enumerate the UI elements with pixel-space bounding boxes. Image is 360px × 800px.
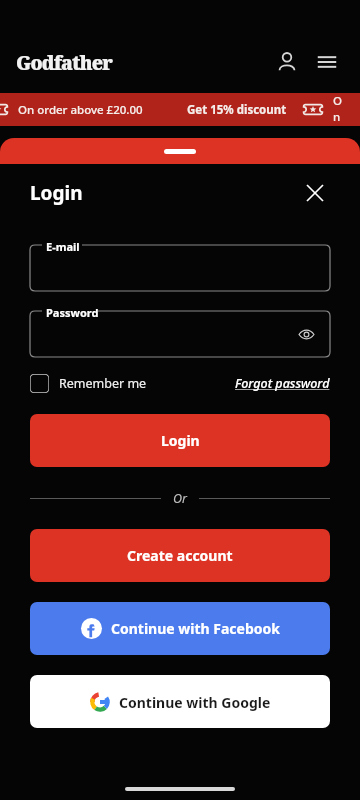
staticText: E-mail [46,239,80,254]
button[interactable]: Login [30,414,330,467]
button[interactable]: Create account [30,529,330,582]
button[interactable]: Continue with Facebook [30,602,330,655]
button[interactable] [30,245,330,291]
button[interactable]: Show password [292,320,320,348]
staticText: Forgot password [235,375,330,392]
staticText: Or [173,490,187,507]
button[interactable]: Forgot password [235,375,330,392]
button[interactable]: Menu [310,45,344,79]
staticText: Login [161,431,200,450]
staticText: On order above £20.00 [18,102,143,118]
staticText: Get 15% discount [187,102,287,118]
button[interactable]: Remember me [30,374,147,393]
staticText: Remember me [59,375,147,392]
button[interactable]: Show password [30,311,330,357]
staticText: Continue with Facebook [111,619,280,638]
staticText: Login [30,180,83,206]
staticText: Continue with Google [119,693,271,712]
button[interactable]: Close [300,178,330,208]
staticText: On order above £20.00 [333,93,348,126]
staticText: Password [46,305,99,320]
button[interactable]: Continue with Google [30,675,330,728]
staticText: Godfather [16,50,113,74]
button[interactable]: Account [270,45,304,79]
staticText: Create account [127,546,233,565]
